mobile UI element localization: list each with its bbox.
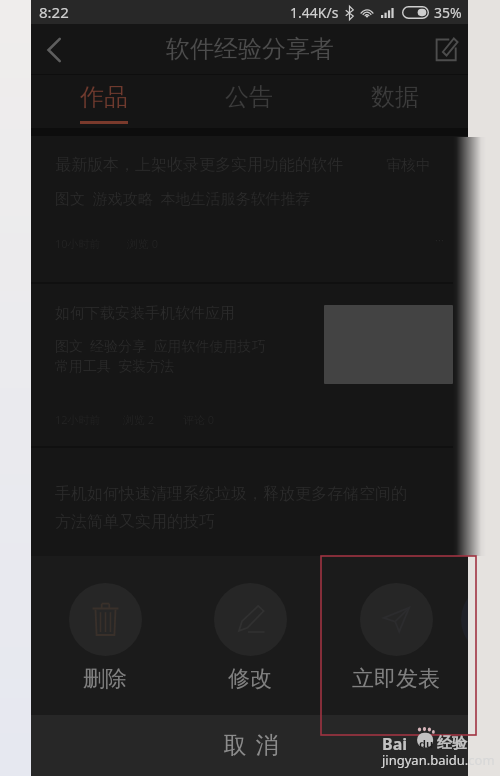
staticText: 数据: [371, 82, 419, 112]
staticText: 图文 游戏攻略 本地生活服务软件推荐: [55, 188, 311, 208]
button[interactable]: 如何下载安装手机软件应用: [31, 284, 468, 446]
staticText: 手机如何快速清理系统垃圾，释放更多存储空间的: [55, 484, 407, 504]
button[interactable]: 手机如何快速清理系统垃圾，释放更多存储空间的: [31, 448, 468, 556]
button[interactable]: 修改: [170, 556, 330, 693]
staticText: 1.44K/s: [290, 3, 339, 22]
staticText: 审核中: [386, 156, 431, 175]
staticText: 最新版本，上架收录更多实用功能的软件: [55, 155, 343, 175]
staticText: 图文 经验分享 应用软件使用技巧: [55, 336, 266, 355]
staticText: 立即发表: [352, 665, 440, 693]
staticText: 35%: [434, 3, 462, 22]
button[interactable]: 公告: [176, 75, 322, 136]
staticText: 修改: [228, 665, 272, 693]
button[interactable]: 删除: [31, 556, 185, 693]
staticText: 作品: [80, 82, 128, 112]
button[interactable]: 数据: [322, 75, 468, 136]
staticText: 取消: [219, 731, 283, 760]
button[interactable]: 作品: [31, 75, 176, 136]
staticText: jingyan.baidu.com: [382, 751, 495, 769]
button[interactable]: Back: [31, 24, 77, 75]
button[interactable]: Share: [461, 583, 468, 656]
staticText: 经验: [437, 734, 467, 753]
staticText: 公告: [225, 82, 273, 112]
button[interactable]: 最新版本，上架收录更多实用功能的软件: [31, 136, 468, 282]
staticText: 软件经验分享者: [166, 34, 334, 64]
staticText: 如何下载安装手机软件应用: [55, 304, 235, 323]
button[interactable]: 取消: [31, 715, 468, 776]
staticText: 8:22: [39, 2, 69, 22]
staticText: 方法简单又实用的技巧: [55, 512, 215, 532]
staticText: 删除: [83, 665, 127, 693]
staticText: 常用工具 安装方法: [55, 356, 175, 375]
staticText: du: [419, 736, 434, 751]
button[interactable]: 立即发表: [316, 556, 468, 693]
button[interactable]: Compose post: [424, 24, 468, 75]
staticText: Bai: [382, 733, 408, 755]
